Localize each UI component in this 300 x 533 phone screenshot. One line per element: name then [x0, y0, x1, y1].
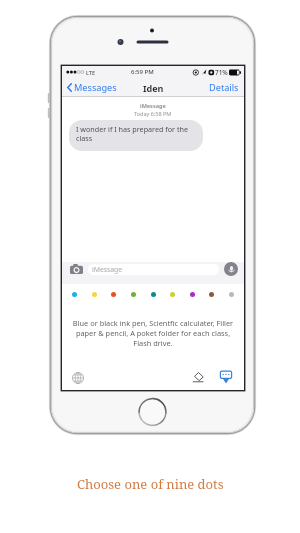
- staticText: Details: [209, 81, 239, 94]
- button[interactable]: Colour 8: [206, 289, 217, 300]
- button[interactable]: Camera: [69, 262, 83, 276]
- button[interactable]: Colour 1: [69, 289, 80, 300]
- button[interactable]: Change keyboard language: [69, 369, 86, 386]
- staticText: I wonder if I has prepared for the class: [76, 124, 196, 144]
- button[interactable]: Colour 6: [167, 289, 178, 300]
- staticText: LTE: [86, 69, 95, 76]
- button[interactable]: Messages: [62, 78, 120, 97]
- staticText: 6:59 PM: [131, 68, 154, 76]
- button[interactable]: Colour 2: [89, 289, 100, 300]
- staticText: Messages: [74, 81, 117, 94]
- staticText: 71%: [215, 68, 228, 77]
- staticText: Choose one of nine dots: [77, 475, 224, 493]
- staticText: Iden: [143, 82, 164, 94]
- button[interactable]: Microphone: [224, 262, 238, 276]
- button[interactable]: Colour 4: [128, 289, 139, 300]
- button[interactable]: Details: [205, 78, 244, 97]
- button[interactable]: Colour 5: [148, 289, 159, 300]
- button[interactable]: I wonder if I has prepared for the class: [69, 120, 203, 151]
- button[interactable]: Colour 9: [226, 289, 237, 300]
- staticText: Blue or black ink pen, Scientfic calcula…: [62, 318, 244, 348]
- staticText: Today 6:58 PM: [134, 110, 172, 117]
- button[interactable]: Erase: [190, 369, 207, 386]
- button[interactable]: Colour 7: [187, 289, 198, 300]
- button[interactable]: Hide keyboard: [217, 368, 234, 385]
- button[interactable]: Colour 3: [108, 289, 119, 300]
- staticText: iMessage: [140, 102, 166, 109]
- staticText: iMessage: [92, 265, 123, 274]
- button[interactable]: iMessage: [88, 264, 219, 275]
